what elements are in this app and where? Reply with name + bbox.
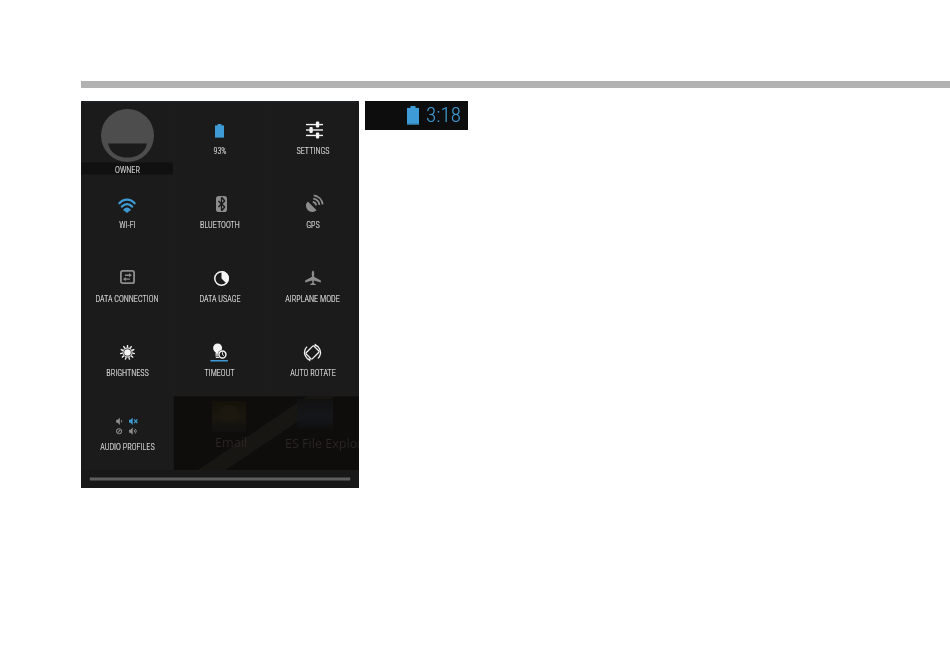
staticText: ES File Explorer: [285, 435, 359, 452]
staticText: AUDIO PROFILES: [100, 442, 155, 452]
button[interactable]: DATA CONNECTION: [81, 249, 173, 323]
button[interactable]: OWNER: [81, 101, 173, 175]
button[interactable]: AIRPLANE MODE: [266, 249, 359, 323]
button[interactable]: BLUETOOTH: [173, 175, 266, 249]
button[interactable]: AUTO ROTATE: [266, 323, 359, 397]
staticText: TIMEOUT: [204, 368, 235, 378]
staticText: Email: [215, 434, 248, 451]
button[interactable]: SETTINGS: [266, 101, 359, 175]
staticText: BRIGHTNESS: [106, 368, 149, 378]
button[interactable]: AUDIO PROFILES: [81, 397, 173, 470]
staticText: DATA USAGE: [199, 294, 241, 304]
button[interactable]: WI-FI: [81, 175, 173, 249]
staticText: GPS: [306, 220, 320, 230]
staticText: DATA CONNECTION: [95, 294, 159, 304]
staticText: BLUETOOTH: [200, 220, 240, 230]
button[interactable]: BRIGHTNESS: [81, 323, 173, 397]
staticText: 93%: [213, 146, 227, 156]
staticText: AUTO ROTATE: [290, 368, 336, 378]
staticText: OWNER: [115, 165, 140, 175]
staticText: 3:18: [426, 103, 461, 128]
button[interactable]: 93%: [173, 101, 266, 175]
button[interactable]: GPS: [266, 175, 359, 249]
button[interactable]: TIMEOUT: [173, 323, 266, 397]
button[interactable]: DATA USAGE: [173, 249, 266, 323]
staticText: SETTINGS: [296, 146, 330, 156]
staticText: AIRPLANE MODE: [285, 294, 340, 304]
staticText: WI-FI: [119, 220, 136, 230]
